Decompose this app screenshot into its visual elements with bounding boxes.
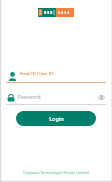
button[interactable]: Cusquare logo [38,8,74,17]
staticText: Cusquare Technologies Private Limited [0,170,112,175]
button[interactable]: Password [6,93,106,105]
button[interactable]: Login [16,111,96,126]
button[interactable]: Show password [97,93,106,102]
button[interactable]: Email ID / User ID [6,69,106,83]
staticText: Password [18,94,97,101]
staticText: Login [49,115,64,122]
staticText: Email ID / User ID [20,71,54,76]
